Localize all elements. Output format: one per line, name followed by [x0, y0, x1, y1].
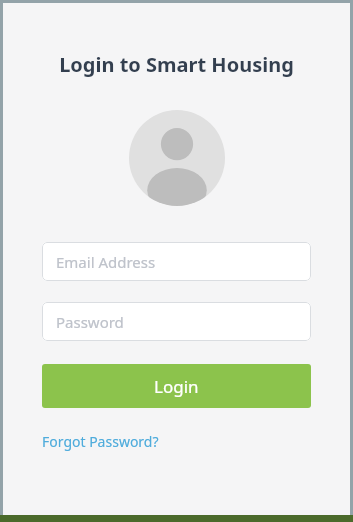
staticText: Password: [56, 312, 124, 332]
button[interactable]: Email Address: [42, 242, 311, 281]
button[interactable]: Password: [42, 302, 311, 341]
button[interactable]: Forgot Password?: [42, 428, 159, 455]
staticText: Login to Smart Housing: [59, 51, 294, 78]
staticText: Email Address: [56, 252, 156, 272]
other: User avatar: [129, 110, 225, 206]
staticText: Forgot Password?: [42, 432, 159, 451]
staticText: Login: [154, 375, 199, 398]
button[interactable]: Login: [42, 364, 311, 408]
